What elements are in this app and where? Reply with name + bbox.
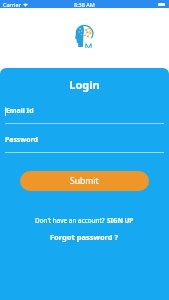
staticText: Forgot password ? (50, 232, 119, 242)
staticText: Login (0, 77, 169, 92)
staticText: Submit (70, 175, 99, 187)
staticText: SIGN UP (107, 216, 134, 225)
button[interactable]: Password (5, 135, 164, 153)
staticText: 8:38 AM (74, 1, 95, 8)
staticText: Email Id (6, 106, 34, 115)
staticText: Don't have an account? (35, 216, 107, 225)
button[interactable]: SIGN UP (107, 216, 134, 225)
button[interactable]: Forgot password ? (0, 232, 169, 242)
button[interactable]: Email Id (5, 106, 164, 124)
staticText: Password (5, 135, 38, 144)
button[interactable]: Submit (20, 171, 149, 191)
staticText: Carrier (3, 1, 21, 8)
